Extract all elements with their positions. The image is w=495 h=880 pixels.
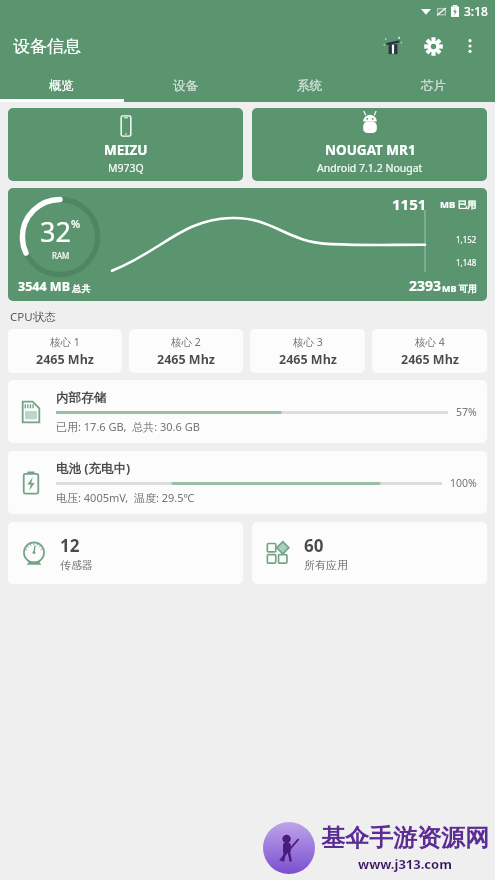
staticText: 3544 MB — [18, 278, 70, 295]
button[interactable]: 核心 4 — [372, 329, 487, 373]
staticText: 1,152 — [456, 234, 477, 245]
staticText: RAM — [52, 250, 70, 261]
staticText: MEIZU — [104, 141, 148, 159]
staticText: 电压: 4005mV, 温度: 29.5℃ — [56, 490, 195, 505]
staticText: 100% — [450, 476, 477, 490]
staticText: M973Q — [108, 161, 144, 175]
staticText: 芯片 — [421, 78, 446, 94]
staticText: 2393 — [409, 276, 442, 295]
staticText: 1,148 — [456, 257, 477, 268]
staticText: 所有应用 — [304, 558, 348, 572]
staticText: Android 7.1.2 Nougat — [317, 161, 423, 175]
staticText: % — [71, 216, 81, 231]
staticText: 核心 3 — [293, 335, 323, 349]
button[interactable]: 32 — [8, 188, 487, 301]
button[interactable]: 电池 (充电中) — [8, 451, 487, 514]
staticText: NOUGAT MR1 — [325, 141, 416, 159]
staticText: 传感器 — [60, 558, 93, 572]
staticText: 核心 4 — [415, 335, 445, 349]
staticText: 总共 — [70, 282, 91, 294]
staticText: 32 — [40, 213, 71, 250]
staticText: 2465 Mhz — [36, 351, 94, 368]
staticText: 60 — [304, 534, 324, 557]
button[interactable]: 概览 — [0, 70, 123, 102]
button[interactable]: 内部存储 — [8, 380, 487, 443]
button[interactable]: MEIZU — [8, 108, 243, 181]
staticText: 核心 2 — [171, 335, 201, 349]
staticText: 12 — [60, 534, 80, 557]
staticText: 57% — [456, 405, 477, 419]
staticText: 内部存储 — [56, 390, 106, 406]
staticText: 3:18 — [464, 3, 488, 19]
staticText: 2465 Mhz — [279, 351, 337, 368]
button[interactable]: 设备 — [123, 70, 247, 102]
staticText: www.j313.com — [358, 855, 452, 873]
button[interactable]: 核心 1 — [8, 329, 122, 373]
button[interactable]: 12 — [8, 522, 243, 584]
button[interactable]: 芯片 — [371, 70, 495, 102]
staticText: 设备 — [173, 78, 198, 94]
staticText: 2465 Mhz — [157, 351, 215, 368]
button[interactable]: 系统 — [247, 70, 371, 102]
staticText: MB 可用 — [442, 282, 477, 294]
staticText: 2465 Mhz — [401, 351, 459, 368]
staticText: 已用: 17.6 GB, 总共: 30.6 GB — [56, 419, 200, 434]
button[interactable]: Settings — [413, 26, 453, 66]
button[interactable]: Clean — [373, 26, 413, 66]
staticText: 电池 (充电中) — [56, 460, 131, 477]
staticText: 系统 — [297, 78, 322, 94]
staticText: 设备信息 — [13, 36, 81, 57]
staticText: CPU状态 — [10, 309, 56, 325]
staticText: 1151 — [392, 194, 427, 214]
button[interactable]: 60 — [252, 522, 487, 584]
button[interactable]: 核心 2 — [129, 329, 243, 373]
staticText: MB 已用 — [440, 198, 477, 211]
staticText: 概览 — [49, 78, 74, 94]
button[interactable]: More options — [453, 29, 487, 63]
staticText: 基伞手游资源网 — [321, 823, 489, 853]
staticText: 核心 1 — [50, 335, 80, 349]
button[interactable]: NOUGAT MR1 — [252, 108, 487, 181]
button[interactable]: 核心 3 — [250, 329, 365, 373]
